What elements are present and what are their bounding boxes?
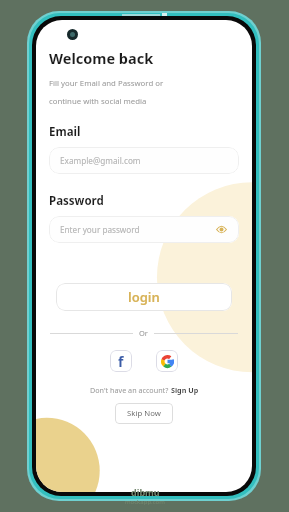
- button[interactable]: Skip Now: [115, 403, 173, 424]
- staticText: Fill your Email and Password or: [49, 78, 164, 89]
- staticText: mockapp.com: [125, 498, 165, 506]
- button[interactable]: login: [56, 283, 232, 311]
- staticText: Welcome back: [49, 48, 154, 68]
- button[interactable]: Sign Up: [171, 385, 199, 395]
- staticText: continue with social media: [49, 96, 147, 107]
- staticText: Email: [49, 124, 81, 140]
- button[interactable]: Sign in with Google: [156, 350, 178, 372]
- staticText: login: [128, 288, 160, 306]
- button[interactable]: Show password: [215, 223, 228, 236]
- staticText: Password: [49, 193, 104, 209]
- staticText: Enter your password: [60, 224, 140, 235]
- staticText: Don't have an account?: [90, 385, 171, 395]
- staticText: Or: [139, 328, 148, 338]
- button[interactable]: Enter your password: [49, 216, 239, 243]
- staticText: Skip Now: [127, 408, 161, 419]
- staticText: f: [118, 352, 124, 371]
- button[interactable]: Sign in with Facebook: [110, 350, 132, 372]
- staticText: dibmu: [131, 486, 160, 498]
- button[interactable]: Example@gmail.com: [49, 147, 239, 174]
- staticText: Sign Up: [171, 385, 199, 395]
- staticText: Example@gmail.com: [60, 155, 141, 166]
